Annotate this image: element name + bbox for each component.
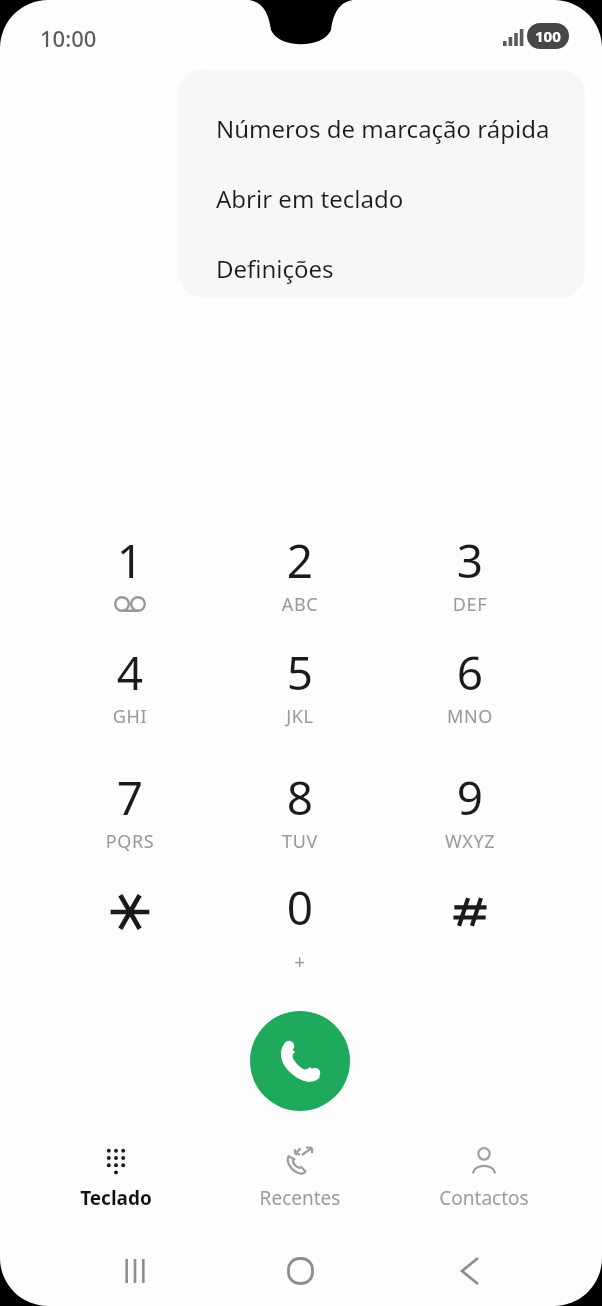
button[interactable]: Abrir em teclado [178,163,585,233]
staticText: Contactos [392,1185,576,1211]
button[interactable]: Teclado [24,1140,208,1228]
staticText: + [225,949,375,975]
staticText: TUV [225,829,375,854]
button[interactable]: Números de marcação rápida [178,93,585,163]
staticText: 1 [55,529,205,592]
staticText: 6 [395,641,545,704]
staticText: WXYZ [395,829,545,854]
staticText: 5 [225,641,375,704]
staticText: ABC [225,592,375,617]
staticText: 7 [55,766,205,829]
button[interactable]: Recentes [208,1140,392,1228]
staticText: JKL [225,704,375,729]
staticText: 4 [55,641,205,704]
button[interactable]: Call [250,1011,350,1111]
button[interactable]: 7 [55,753,205,857]
button[interactable]: 6 [395,628,545,732]
button[interactable]: Home [250,1240,350,1302]
staticText: Definições [216,252,334,285]
staticText: 0 [225,876,375,939]
staticText: 10:00 [40,23,97,53]
staticText: DEF [395,592,545,617]
button[interactable] [395,863,545,967]
button[interactable]: 1 [55,516,205,620]
staticText: Recentes [208,1185,392,1211]
button[interactable]: 3 [395,516,545,620]
staticText: 100 [535,26,561,46]
button[interactable]: Contactos [392,1140,576,1228]
staticText: 8 [225,766,375,829]
button[interactable]: 8 [225,753,375,857]
staticText: GHI [55,704,205,729]
staticText: PQRS [55,829,205,854]
button[interactable]: 9 [395,753,545,857]
staticText: MNO [395,704,545,729]
button[interactable]: 0 [225,863,375,967]
button[interactable]: 4 [55,628,205,732]
staticText: 3 [395,529,545,592]
staticText: Números de marcação rápida [216,112,550,145]
button[interactable]: 2 [225,516,375,620]
staticText: 9 [395,766,545,829]
staticText: Abrir em teclado [216,182,404,215]
staticText: Teclado [24,1185,208,1211]
button[interactable]: Definições [178,233,585,298]
button[interactable]: Recents [85,1240,185,1302]
button[interactable]: 5 [225,628,375,732]
staticText: 2 [225,529,375,592]
button[interactable] [55,863,205,967]
button[interactable]: Back [420,1240,520,1302]
